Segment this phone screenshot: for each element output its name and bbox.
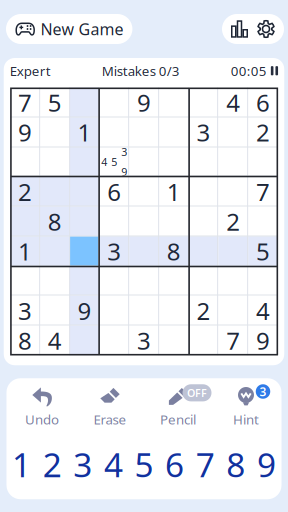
button[interactable] bbox=[10, 266, 40, 296]
button[interactable]: 5 bbox=[40, 87, 70, 117]
button[interactable]: 9 bbox=[248, 325, 278, 355]
button[interactable]: 5 bbox=[248, 236, 278, 266]
button[interactable]: 8 bbox=[10, 325, 40, 355]
button[interactable]: 3 bbox=[10, 296, 40, 326]
button[interactable]: Settings bbox=[256, 18, 276, 40]
button[interactable] bbox=[99, 296, 129, 326]
button[interactable] bbox=[159, 147, 189, 177]
button[interactable] bbox=[99, 117, 129, 147]
button[interactable]: 4 bbox=[40, 325, 70, 355]
button[interactable] bbox=[129, 296, 159, 326]
button[interactable] bbox=[129, 266, 159, 296]
button[interactable]: 2 bbox=[37, 447, 67, 481]
button[interactable] bbox=[70, 325, 99, 355]
button[interactable] bbox=[70, 147, 99, 177]
button[interactable]: 9 bbox=[10, 117, 40, 147]
button[interactable]: 7 bbox=[10, 87, 40, 117]
button[interactable] bbox=[159, 206, 189, 236]
button[interactable] bbox=[218, 117, 248, 147]
button[interactable] bbox=[129, 147, 159, 177]
button[interactable] bbox=[189, 147, 218, 177]
button[interactable]: Statistics bbox=[230, 18, 249, 40]
button[interactable] bbox=[10, 147, 40, 177]
button[interactable]: New Game bbox=[6, 14, 132, 44]
button[interactable]: 4 bbox=[98, 447, 129, 481]
button[interactable] bbox=[189, 177, 218, 207]
button[interactable]: 3 bbox=[67, 447, 98, 481]
button[interactable] bbox=[70, 87, 99, 117]
button[interactable] bbox=[40, 147, 70, 177]
button[interactable]: 9 bbox=[70, 296, 99, 326]
button[interactable] bbox=[99, 266, 129, 296]
staticText: 9 bbox=[137, 86, 151, 118]
button[interactable] bbox=[218, 266, 248, 296]
button[interactable] bbox=[248, 147, 278, 177]
button[interactable]: 4 bbox=[248, 296, 278, 326]
button[interactable] bbox=[70, 177, 99, 207]
button[interactable]: 2 bbox=[10, 177, 40, 207]
button[interactable] bbox=[70, 206, 99, 236]
button[interactable] bbox=[129, 206, 159, 236]
staticText: 1 bbox=[12, 442, 31, 486]
button[interactable] bbox=[159, 87, 189, 117]
button[interactable]: 6 bbox=[159, 447, 190, 481]
button[interactable] bbox=[99, 325, 129, 355]
button[interactable] bbox=[99, 206, 129, 236]
button[interactable]: Erase bbox=[76, 388, 144, 426]
button[interactable] bbox=[248, 206, 278, 236]
button[interactable] bbox=[218, 296, 248, 326]
button[interactable] bbox=[159, 117, 189, 147]
button[interactable] bbox=[248, 266, 278, 296]
button[interactable] bbox=[40, 266, 70, 296]
button[interactable]: 7 bbox=[248, 177, 278, 207]
button[interactable] bbox=[189, 325, 218, 355]
button[interactable]: 4 bbox=[218, 87, 248, 117]
button[interactable] bbox=[70, 236, 99, 266]
button[interactable] bbox=[189, 236, 218, 266]
button[interactable] bbox=[189, 87, 218, 117]
button[interactable]: Pencil bbox=[144, 388, 212, 426]
button[interactable]: 1 bbox=[10, 236, 40, 266]
button[interactable] bbox=[159, 266, 189, 296]
button[interactable] bbox=[129, 117, 159, 147]
button[interactable]: 9 bbox=[251, 447, 282, 481]
button[interactable]: 8 bbox=[159, 236, 189, 266]
button[interactable]: 1 bbox=[70, 117, 99, 147]
button[interactable] bbox=[189, 266, 218, 296]
button[interactable] bbox=[40, 236, 70, 266]
button[interactable]: 2 bbox=[248, 117, 278, 147]
button[interactable] bbox=[70, 266, 99, 296]
button[interactable]: 3 bbox=[99, 147, 129, 177]
button[interactable]: 6 bbox=[248, 87, 278, 117]
button[interactable] bbox=[159, 296, 189, 326]
button[interactable] bbox=[10, 206, 40, 236]
button[interactable]: 8 bbox=[220, 447, 251, 481]
button[interactable]: 1 bbox=[6, 447, 37, 481]
button[interactable]: 2 bbox=[218, 206, 248, 236]
button[interactable]: 7 bbox=[190, 447, 220, 481]
button[interactable] bbox=[218, 177, 248, 207]
button[interactable]: 3 bbox=[129, 325, 159, 355]
button[interactable] bbox=[218, 236, 248, 266]
button[interactable]: 9 bbox=[129, 87, 159, 117]
button[interactable] bbox=[40, 296, 70, 326]
button[interactable]: 5 bbox=[129, 447, 159, 481]
button[interactable]: 8 bbox=[40, 206, 70, 236]
button[interactable] bbox=[99, 87, 129, 117]
button[interactable]: Hint bbox=[212, 388, 280, 426]
button[interactable] bbox=[189, 206, 218, 236]
button[interactable]: 3 bbox=[189, 117, 218, 147]
button[interactable] bbox=[40, 117, 70, 147]
button[interactable] bbox=[129, 177, 159, 207]
staticText: New Game bbox=[40, 18, 123, 40]
button[interactable] bbox=[129, 236, 159, 266]
button[interactable]: 7 bbox=[218, 325, 248, 355]
button[interactable]: 6 bbox=[99, 177, 129, 207]
button[interactable] bbox=[218, 147, 248, 177]
button[interactable]: 1 bbox=[159, 177, 189, 207]
button[interactable]: Undo bbox=[8, 388, 76, 426]
button[interactable]: 2 bbox=[189, 296, 218, 326]
button[interactable] bbox=[159, 325, 189, 355]
button[interactable]: 3 bbox=[99, 236, 129, 266]
button[interactable] bbox=[40, 177, 70, 207]
